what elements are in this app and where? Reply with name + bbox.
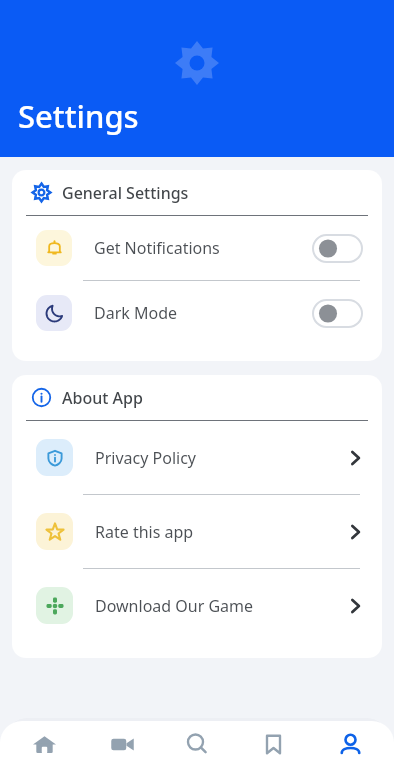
button[interactable]: Search [165,721,229,768]
button[interactable]: Profile [318,721,382,768]
button[interactable]: Videos [89,721,153,768]
staticText: Settings [18,95,139,137]
staticText: Privacy Policy [95,447,351,469]
button[interactable]: General Settings [12,170,382,215]
staticText: Get Notifications [94,237,313,259]
button[interactable]: Download Our Game [12,569,382,642]
button[interactable]: About App [12,375,382,420]
button[interactable]: Rate this app [12,495,382,568]
button[interactable]: Toggle Dark Mode [313,300,362,327]
staticText: General Settings [62,182,189,204]
staticText: About App [62,387,143,409]
button[interactable]: Get Notifications [12,216,382,280]
staticText: Download Our Game [95,595,351,617]
button[interactable]: Home [12,721,76,768]
button[interactable]: Toggle Get Notifications [313,235,362,262]
button[interactable]: Bookmarks [241,721,305,768]
button[interactable]: Privacy Policy [12,421,382,494]
staticText: Rate this app [95,521,351,543]
staticText: Dark Mode [94,302,313,324]
button[interactable]: Dark Mode [12,281,382,345]
